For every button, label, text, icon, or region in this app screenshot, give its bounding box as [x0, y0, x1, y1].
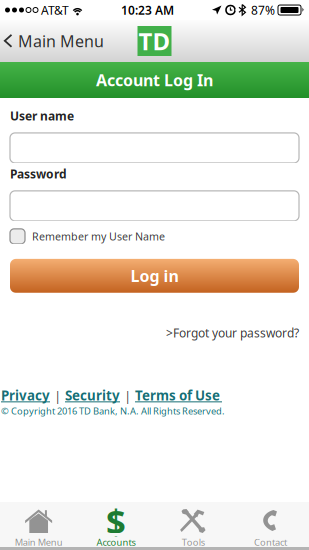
- staticText: User name: [10, 108, 74, 124]
- staticText: >Forgot your password?: [166, 325, 299, 341]
- staticText: 10:23 AM: [121, 2, 174, 18]
- button[interactable]: Tools: [154, 502, 232, 547]
- staticText: TD: [138, 25, 170, 57]
- staticText: Account Log In: [96, 69, 213, 91]
- staticText: Remember my User Name: [32, 229, 165, 243]
- button[interactable]: Log in: [10, 259, 299, 293]
- button[interactable]: Terms of Use: [135, 389, 222, 402]
- staticText: Main Menu: [18, 30, 104, 52]
- button[interactable]: Remember my User Name: [10, 229, 299, 244]
- staticText: AT&T: [38, 2, 72, 18]
- button[interactable]: Security: [65, 389, 120, 402]
- button[interactable]: Main Menu: [0, 502, 77, 547]
- staticText: Privacy: [1, 386, 50, 404]
- staticText: Password: [10, 166, 67, 182]
- staticText: Terms of Use: [135, 386, 220, 404]
- button[interactable]: Main Menu: [0, 20, 114, 62]
- staticText: © Copyright 2016 TD Bank, N.A. All Right…: [1, 405, 225, 417]
- staticText: |: [54, 387, 61, 405]
- button[interactable]: Contact: [232, 502, 309, 547]
- staticText: Contact: [254, 536, 287, 548]
- staticText: $: [106, 498, 126, 544]
- button[interactable]: >Forgot your password?: [10, 325, 299, 341]
- button[interactable]: Privacy: [1, 389, 50, 402]
- staticText: Accounts: [96, 536, 135, 548]
- staticText: Tools: [182, 536, 205, 548]
- staticText: 87%: [251, 2, 275, 18]
- button[interactable]: $: [77, 502, 154, 547]
- staticText: Security: [65, 386, 120, 404]
- staticText: |: [124, 387, 131, 405]
- staticText: Main Menu: [15, 536, 63, 548]
- staticText: Log in: [130, 265, 178, 286]
